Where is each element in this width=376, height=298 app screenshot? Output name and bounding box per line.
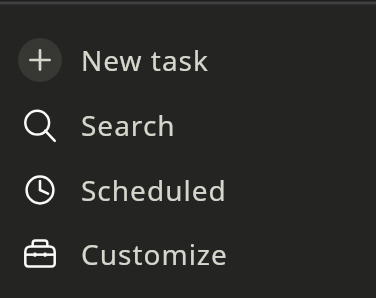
other: Search [22,107,58,143]
staticText: Search [81,106,176,144]
other: Scheduled [22,172,58,208]
staticText: Scheduled [81,171,227,209]
staticText: Customize [81,235,228,273]
staticText: New task [81,41,209,79]
button[interactable]: Search [0,92,376,157]
button[interactable]: Customize [0,221,376,286]
other: Customize [22,236,58,272]
button[interactable]: Scheduled [0,157,376,222]
other: Add a new task [22,42,58,78]
button[interactable]: Add a new task [0,27,376,92]
